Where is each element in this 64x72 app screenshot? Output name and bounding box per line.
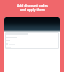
button[interactable]	[5, 32, 59, 49]
staticText: Add discount codes and apply them	[17, 4, 48, 11]
